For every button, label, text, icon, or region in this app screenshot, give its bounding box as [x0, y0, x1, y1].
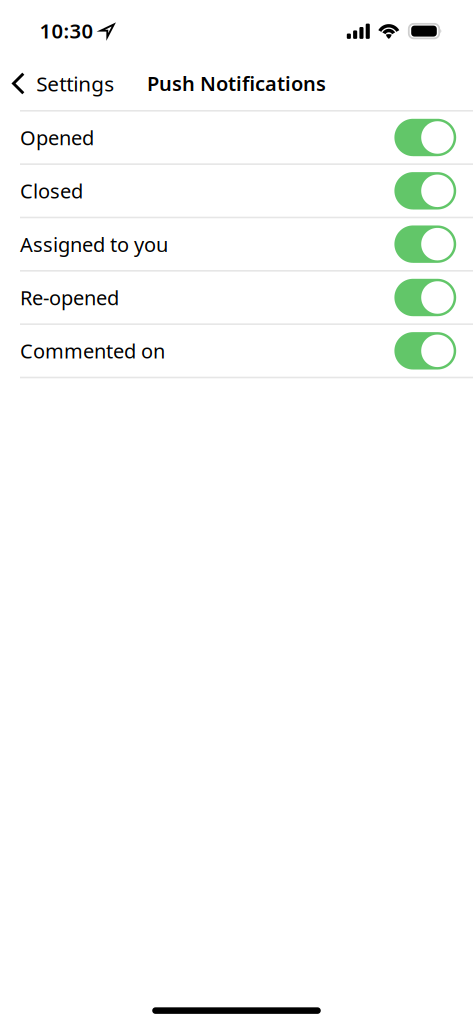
button[interactable]: On — [0, 112, 473, 165]
staticText: 10:30 — [39, 17, 93, 44]
button[interactable]: On — [0, 218, 473, 272]
staticText: Re-opened — [20, 284, 119, 311]
button[interactable]: On — [0, 165, 473, 218]
button[interactable]: On — [0, 272, 473, 325]
staticText: Settings — [36, 69, 114, 97]
staticText: Opened — [20, 124, 94, 151]
staticText: Commented on — [20, 337, 165, 364]
staticText: Assigned to you — [20, 230, 168, 258]
button[interactable]: On — [0, 325, 473, 378]
button[interactable]: Settings — [0, 62, 124, 104]
staticText: Push Notifications — [147, 70, 326, 97]
staticText: Closed — [20, 177, 83, 204]
